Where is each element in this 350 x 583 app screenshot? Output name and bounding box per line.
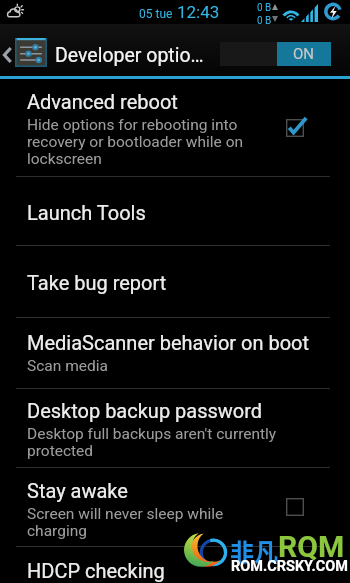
button[interactable]: Advanced reboot — [0, 79, 350, 176]
button[interactable]: HDCP checking — [0, 547, 350, 583]
button[interactable]: Stay awake — [0, 468, 350, 546]
staticText: ON — [293, 45, 315, 63]
staticText: 05 tue — [139, 7, 173, 21]
staticText: 0 B — [257, 15, 272, 27]
staticText: ROM.CRSKY.COM — [231, 558, 348, 575]
staticText: Launch Tools — [27, 201, 146, 224]
staticText: 12:43 — [177, 2, 220, 22]
staticText: Hide options for rebooting into recovery… — [27, 116, 244, 168]
staticText: Screen will never sleep while charging — [27, 505, 224, 540]
staticText: Desktop backup password — [27, 399, 263, 422]
staticText: 0 B — [257, 2, 272, 14]
staticText: Advanced reboot — [27, 90, 178, 113]
staticText: 非凡 — [230, 533, 278, 568]
staticText: Scan media — [27, 357, 108, 375]
staticText: Desktop full backups aren't currently pr… — [27, 425, 277, 460]
button[interactable]: Take bug report — [0, 246, 350, 317]
button[interactable]: Desktop backup password — [0, 389, 350, 467]
button[interactable]: ON — [220, 42, 331, 66]
staticText: Take bug report — [27, 271, 167, 294]
staticText: MediaScanner behavior on boot — [27, 331, 310, 354]
button[interactable]: Launch Tools — [0, 177, 350, 245]
staticText: RQM — [278, 529, 345, 564]
staticText: Developer optio… — [55, 44, 204, 67]
button[interactable]: MediaScanner behavior on boot — [0, 318, 350, 388]
button[interactable]: Back — [0, 47, 15, 62]
staticText: HDCP checking — [27, 559, 165, 582]
staticText: Stay awake — [27, 479, 128, 502]
